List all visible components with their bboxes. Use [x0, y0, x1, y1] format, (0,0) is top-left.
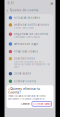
staticText: Seguridad de la cuenta — [14, 32, 48, 36]
staticText: Acerca de — [14, 87, 29, 90]
staticText: ‹ — [6, 8, 8, 13]
staticText: Métodos de pago — [14, 42, 39, 45]
staticText: Cancelar — [21, 102, 30, 105]
button[interactable]: Cerrar sesión — [7, 70, 53, 77]
button[interactable]: Gestionar notificaciones — [7, 22, 53, 31]
staticText: Gestionar notificaciones — [14, 23, 49, 26]
staticText: ▮▮ — [50, 2, 52, 5]
staticText: Todos tus datos se borrarán de forma per… — [8, 95, 45, 100]
staticText: Contraseña y verificación — [14, 36, 40, 39]
staticText: ¿Quieres eliminar tu cuenta? — [8, 87, 40, 94]
button[interactable]: Back — [6, 8, 8, 13]
staticText: Ajustes de cuenta — [9, 8, 38, 12]
staticText: Gestiona tus planes activos y revisa las… — [14, 60, 50, 68]
button[interactable]: Eliminar cuenta — [32, 101, 52, 106]
staticText: Privacidad y datos — [14, 50, 38, 53]
button[interactable]: Acerca de — [7, 85, 53, 93]
button[interactable]: Privacidad y datos — [7, 48, 53, 55]
staticText: Eliminar cuenta — [33, 102, 50, 105]
staticText: Actualizar mis datos — [14, 16, 40, 19]
button[interactable]: Suscripciones — [7, 55, 53, 70]
button[interactable]: Seguridad de la cuenta — [7, 31, 53, 40]
staticText: Suscripciones — [14, 57, 35, 60]
button[interactable]: Eliminar cuenta — [7, 77, 53, 85]
button[interactable]: Cancelar — [20, 102, 31, 106]
button[interactable]: Métodos de pago — [7, 40, 53, 48]
button[interactable]: Actualizar mis datos — [7, 14, 53, 22]
staticText: Eliminar cuenta — [14, 80, 36, 83]
staticText: Correo, SMS y push — [14, 27, 34, 29]
staticText: Cerrar sesión — [14, 72, 32, 75]
staticText: 9:41 — [7, 2, 13, 5]
